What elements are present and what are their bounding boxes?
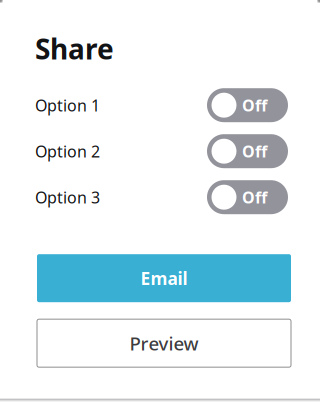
staticText: Off [242,95,267,116]
staticText: Option 2 [35,141,100,162]
staticText: Option 1 [35,95,100,116]
button[interactable]: Preview [37,319,291,367]
staticText: Preview [129,331,198,356]
staticText: Share [35,30,114,67]
staticText: Email [140,267,187,290]
button[interactable]: Email [37,254,291,302]
staticText: Off [242,187,267,208]
button[interactable]: Option 1 [35,88,288,122]
button[interactable]: Option 3 [35,180,288,214]
button[interactable]: Option 2 [35,134,288,168]
staticText: Option 3 [35,187,100,208]
staticText: Off [242,141,267,162]
